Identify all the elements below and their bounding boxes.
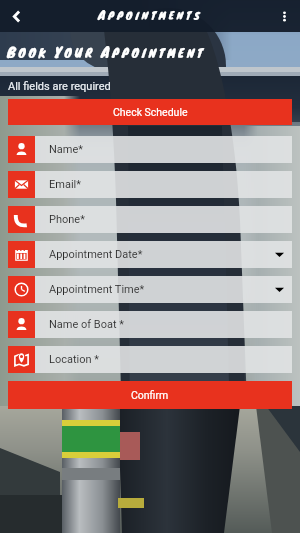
button[interactable]: Name of Boat * — [8, 311, 292, 338]
button[interactable]: Back — [0, 0, 32, 32]
staticText: Check Schedule — [113, 106, 188, 118]
staticText: Email* — [49, 178, 81, 191]
button[interactable]: Location * — [8, 346, 292, 373]
button[interactable]: Check Schedule — [8, 99, 292, 125]
button[interactable]: Name* — [8, 136, 292, 163]
button[interactable]: Appointment Time* — [8, 276, 292, 303]
staticText: Name of Boat * — [49, 318, 125, 331]
staticText: APPOINTMENTS — [98, 4, 203, 23]
button[interactable]: Email* — [8, 171, 292, 198]
staticText: Appointment Date* — [49, 248, 143, 261]
staticText: Confirm — [131, 389, 169, 401]
staticText: All fields are required — [8, 80, 111, 93]
button[interactable]: Appointment Date* — [8, 241, 292, 268]
staticText: Name* — [49, 143, 84, 156]
staticText: BOOK YOUR APPOINTMENT — [7, 40, 206, 63]
button[interactable]: Confirm — [8, 381, 292, 409]
staticText: Phone* — [49, 213, 85, 226]
button[interactable]: Phone* — [8, 206, 292, 233]
button[interactable]: More options — [268, 0, 300, 32]
staticText: Location * — [49, 353, 100, 366]
staticText: Appointment Time* — [49, 283, 145, 296]
